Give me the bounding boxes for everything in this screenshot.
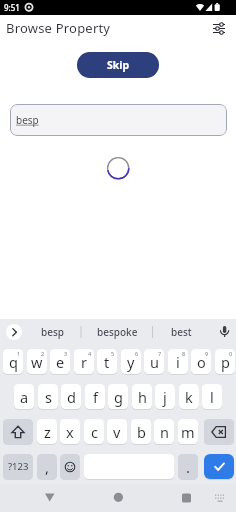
button[interactable]: z	[37, 419, 57, 444]
staticText: 1	[17, 350, 21, 357]
button[interactable]: bespoke	[82, 320, 152, 344]
button[interactable]	[176, 487, 197, 507]
button[interactable]: s	[38, 384, 58, 409]
staticText: c	[91, 422, 98, 442]
button[interactable]	[39, 487, 60, 507]
button[interactable]: l	[202, 384, 222, 409]
button[interactable]: c	[84, 419, 104, 444]
staticText: x	[66, 422, 74, 442]
button[interactable]: best	[156, 320, 206, 344]
staticText: ?123	[8, 460, 29, 473]
staticText: j	[163, 387, 167, 407]
staticText: u	[150, 352, 159, 372]
staticText: 4	[88, 350, 92, 357]
button[interactable]: m	[178, 419, 198, 444]
button[interactable]: x	[60, 419, 80, 444]
staticText: q	[9, 352, 18, 372]
button[interactable]: e	[50, 349, 70, 374]
button[interactable]: v	[107, 419, 127, 444]
staticText: p	[221, 352, 230, 372]
staticText: 2	[41, 350, 45, 357]
staticText: v	[113, 422, 121, 442]
staticText: .	[186, 457, 190, 477]
staticText: 8	[182, 350, 186, 357]
staticText: ,	[45, 457, 49, 477]
staticText: f	[93, 387, 98, 407]
button[interactable]: y	[121, 349, 141, 374]
button[interactable]: ,	[37, 454, 57, 479]
staticText: bespoke	[97, 325, 138, 339]
staticText: l	[210, 387, 214, 407]
staticText: 6	[135, 350, 139, 357]
staticText: z	[44, 422, 51, 442]
button[interactable]: besp	[10, 104, 227, 136]
button[interactable]: q	[3, 349, 23, 374]
button[interactable]	[204, 454, 234, 479]
staticText: r	[81, 352, 87, 372]
button[interactable]	[208, 18, 230, 39]
staticText: best	[171, 325, 192, 339]
staticText: 0	[229, 350, 233, 357]
button[interactable]: w	[27, 349, 47, 374]
staticText: k	[185, 387, 193, 407]
staticText: g	[114, 387, 123, 407]
button[interactable]: d	[61, 384, 81, 409]
staticText: w	[31, 352, 43, 372]
staticText: 9:51	[4, 2, 20, 13]
button[interactable]: r	[74, 349, 94, 374]
button[interactable]: ?123	[3, 454, 33, 479]
staticText: t	[104, 352, 110, 372]
button[interactable]	[108, 487, 129, 507]
button[interactable]	[6, 324, 22, 340]
staticText: 5	[111, 350, 115, 357]
staticText: s	[45, 387, 52, 407]
staticText: 3	[64, 350, 68, 357]
button[interactable]: j	[155, 384, 175, 409]
staticText: e	[56, 352, 65, 372]
staticText: b	[137, 422, 146, 442]
button[interactable]	[204, 419, 234, 444]
button[interactable]: p	[215, 349, 235, 374]
staticText: besp	[41, 325, 64, 339]
staticText: d	[67, 387, 76, 407]
button[interactable]: Skip	[77, 52, 159, 78]
staticText: a	[20, 387, 29, 407]
staticText: 9	[205, 350, 209, 357]
staticText: n	[160, 422, 169, 442]
button[interactable]: a	[14, 384, 34, 409]
staticText: besp	[16, 113, 39, 127]
button[interactable]: b	[131, 419, 151, 444]
button[interactable]: u	[144, 349, 164, 374]
staticText: 7	[158, 350, 162, 357]
button[interactable]	[60, 454, 80, 479]
button[interactable]: o	[191, 349, 211, 374]
button[interactable]: t	[97, 349, 117, 374]
button[interactable]: h	[132, 384, 152, 409]
staticText: i	[176, 352, 180, 372]
button[interactable]: k	[179, 384, 199, 409]
staticText: o	[197, 352, 206, 372]
button[interactable]: g	[108, 384, 128, 409]
button[interactable]: f	[85, 384, 105, 409]
staticText: Browse Property	[6, 19, 111, 37]
staticText: m	[181, 422, 195, 442]
button[interactable]: besp	[27, 320, 77, 344]
staticText: y	[127, 352, 135, 372]
button[interactable]: n	[154, 419, 174, 444]
staticText: h	[138, 387, 147, 407]
staticText: Skip	[107, 58, 130, 72]
button[interactable]: i	[168, 349, 188, 374]
button[interactable]	[3, 419, 33, 444]
button[interactable]: .	[178, 454, 198, 479]
